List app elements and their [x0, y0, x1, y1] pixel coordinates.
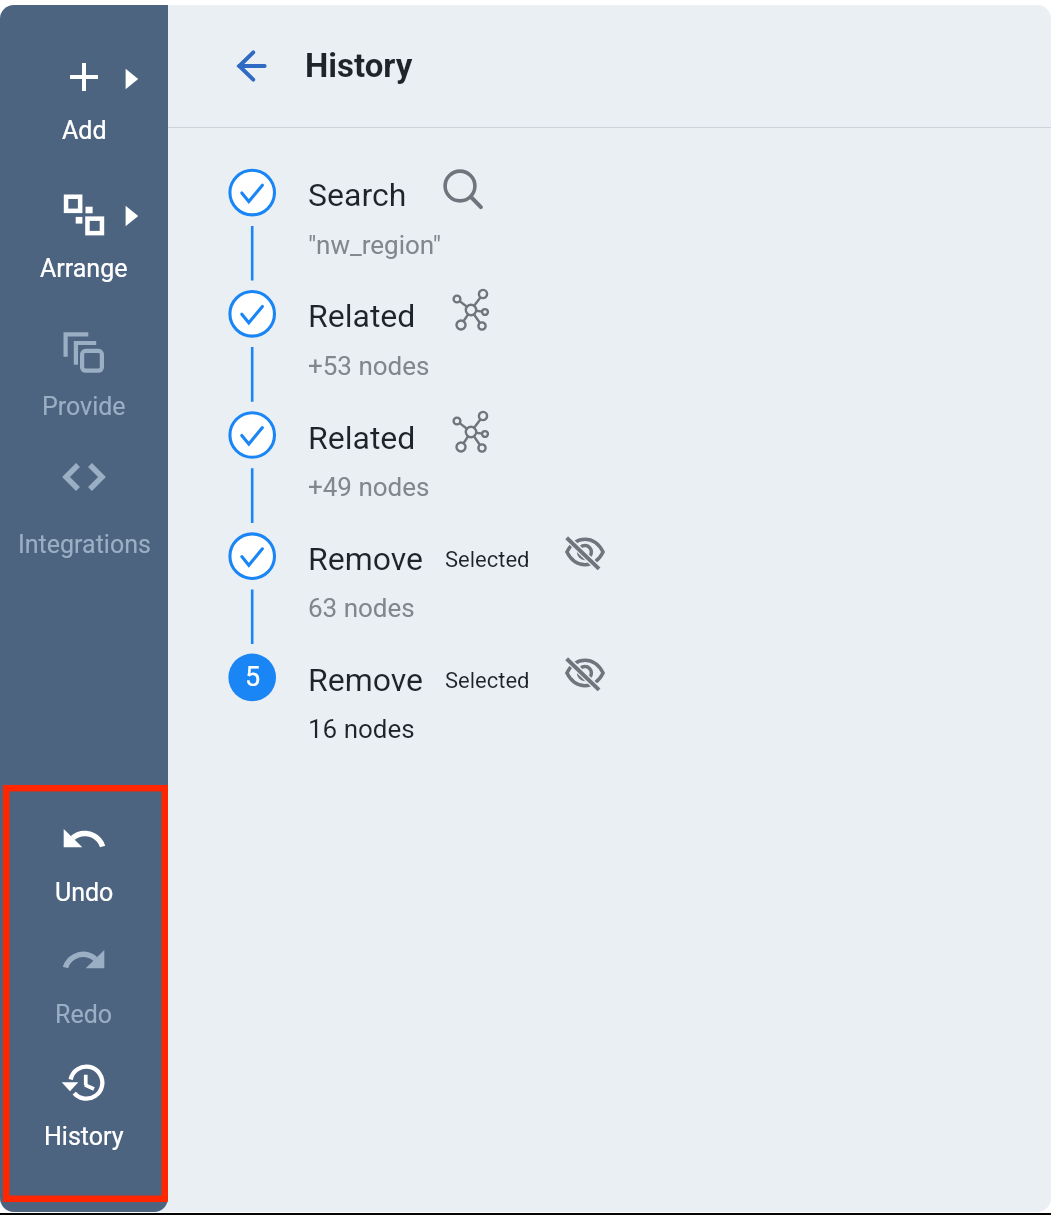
staticText: 5 [245, 661, 261, 693]
button[interactable]: Back [217, 42, 265, 90]
staticText: Remove [308, 661, 424, 699]
staticText: History [44, 1122, 124, 1151]
button[interactable]: Undo [0, 808, 168, 909]
button[interactable] [278, 280, 798, 388]
staticText: Selected [445, 547, 530, 573]
button[interactable]: Provide [0, 322, 168, 423]
staticText: Add [62, 116, 107, 145]
staticText: Undo [55, 878, 114, 907]
staticText: Arrange [40, 254, 128, 283]
button[interactable]: Integrations [0, 447, 168, 561]
button[interactable] [278, 159, 798, 267]
staticText: Provide [42, 392, 126, 421]
button[interactable] [278, 643, 798, 751]
staticText: +49 nodes [308, 472, 430, 502]
staticText: Redo [55, 1000, 113, 1029]
staticText: Related [308, 297, 416, 335]
button[interactable]: History [0, 1052, 168, 1153]
staticText: "nw_region" [308, 230, 442, 260]
button[interactable] [278, 522, 798, 630]
button[interactable]: Add [0, 47, 168, 147]
staticText: Related [308, 419, 416, 457]
button[interactable] [278, 401, 798, 509]
staticText: Integrations [18, 530, 151, 559]
staticText: Selected [445, 668, 530, 694]
button[interactable]: Arrange [0, 184, 168, 285]
staticText: Search [308, 176, 407, 214]
staticText: History [305, 46, 413, 85]
button[interactable]: Redo [0, 929, 168, 1031]
staticText: 63 nodes [308, 593, 415, 623]
staticText: Remove [308, 540, 424, 578]
staticText: +53 nodes [308, 351, 430, 381]
staticText: 16 nodes [308, 714, 415, 744]
